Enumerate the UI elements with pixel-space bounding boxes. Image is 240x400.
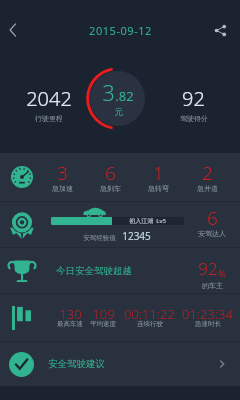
staticText: 1 [153,160,164,186]
staticText: 初入江湖 Lv5 [129,217,166,225]
staticText: 急刹车 [100,184,121,193]
other: More [217,359,227,369]
staticText: 安全驾驶建议 [48,358,105,370]
staticText: 109 [92,305,115,323]
button[interactable]: 初入江湖 Lv5 [0,202,240,247]
staticText: 急速时长 [195,320,221,328]
staticText: % [218,267,226,279]
button[interactable]: Share [205,15,235,45]
staticText: .82 [115,87,134,105]
button[interactable]: 今日安全驾驶超越 [0,248,240,293]
staticText: 行驶里程 [35,114,63,123]
staticText: 2015-09-12 [89,23,152,38]
staticText: 驾驶得分 [180,114,208,123]
staticText: 今日安全驾驶超越 [56,265,132,277]
staticText: 92 [182,85,205,112]
staticText: 2 [202,160,213,186]
staticText: 最高车速 [57,320,83,328]
staticText: 安驾达人 [198,229,226,238]
staticText: 急转弯 [148,184,169,193]
staticText: 130 [59,305,82,323]
staticText: 6 [105,160,116,186]
staticText: 01:23:34 [182,305,233,323]
staticText: 6 [207,205,218,231]
staticText: 00:11:22 [124,305,175,323]
button[interactable]: 130 [0,294,240,341]
staticText: 3 [102,77,115,107]
staticText: 2042 [26,85,72,112]
staticText: 92 [198,257,218,280]
staticText: 的车主 [202,281,223,290]
staticText: 安驾经验值 [83,234,116,242]
button[interactable]: Back [0,13,30,47]
button[interactable]: 安全驾驶建议 [0,342,240,386]
staticText: 平均速度 [90,320,116,328]
staticText: 急并道 [197,184,218,193]
staticText: 元 [114,107,123,118]
staticText: 急加速 [52,184,73,193]
staticText: 3 [57,160,68,186]
staticText: 连续行驶 [137,320,163,328]
staticText: 12345 [122,229,151,243]
button[interactable]: 3 [0,153,240,201]
